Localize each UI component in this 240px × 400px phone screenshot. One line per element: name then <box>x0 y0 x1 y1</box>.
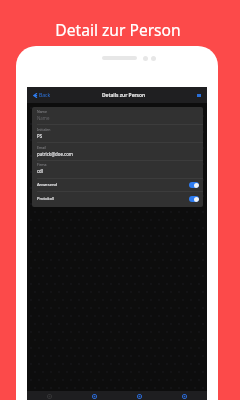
button[interactable]: Protokoll <box>32 192 203 206</box>
staticText: cdl <box>37 168 43 174</box>
button[interactable]: Firma <box>32 160 203 178</box>
button[interactable]: Contacts <box>117 391 162 400</box>
staticText: Anwesend <box>37 182 57 188</box>
staticText: Email <box>37 145 46 150</box>
button[interactable]: More <box>162 391 207 400</box>
button[interactable]: Name <box>32 107 203 125</box>
staticText: Details zur Person <box>102 92 146 99</box>
staticText: PS <box>37 133 43 139</box>
staticText: Initialen <box>37 127 51 132</box>
staticText: Back <box>39 92 51 99</box>
button[interactable]: Home <box>27 391 72 400</box>
button[interactable]: Back <box>27 87 207 103</box>
button[interactable]: Anwesend <box>32 178 203 192</box>
staticText: Protokoll <box>37 196 55 202</box>
staticText: patrick@doe.com <box>37 151 73 157</box>
staticText: Name <box>37 115 50 121</box>
staticText: Detail zur Person <box>0 19 238 40</box>
button[interactable]: Email <box>32 143 203 161</box>
button[interactable]: Initialen <box>32 125 203 143</box>
staticText: Name <box>37 109 47 114</box>
staticText: Firma <box>37 162 47 167</box>
button[interactable]: Events <box>72 391 117 400</box>
